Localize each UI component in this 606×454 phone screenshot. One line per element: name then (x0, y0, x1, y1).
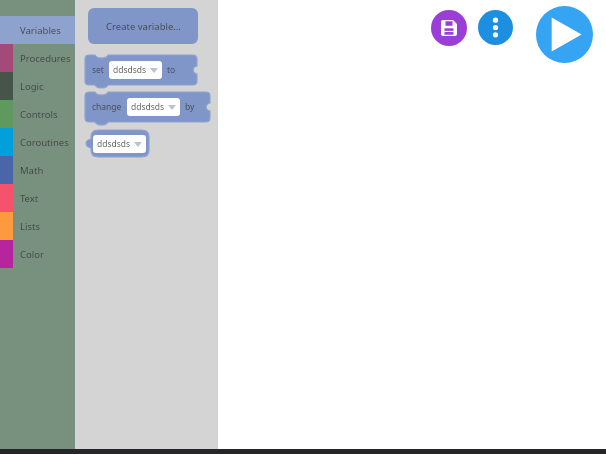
staticText: by (185, 101, 195, 113)
button[interactable]: Color (0, 240, 75, 268)
staticText: Variables (20, 24, 61, 37)
staticText: ddsdsds (113, 64, 147, 76)
button[interactable]: Lists (0, 212, 75, 240)
button[interactable]: Math (0, 156, 75, 184)
staticText: Math (20, 164, 44, 177)
button[interactable]: Variables (0, 16, 75, 44)
button[interactable]: Run (536, 6, 593, 63)
button[interactable]: Procedures (0, 44, 75, 72)
button[interactable]: ddsdsds (97, 135, 142, 153)
button[interactable]: Logic (0, 72, 75, 100)
button[interactable]: ddsdsds (113, 61, 158, 79)
staticText: Color (20, 248, 44, 261)
button[interactable]: Controls (0, 100, 75, 128)
button[interactable]: set (85, 55, 205, 91)
staticText: Logic (20, 80, 44, 93)
staticText: change (92, 101, 122, 113)
staticText: ddsdsds (131, 101, 165, 113)
staticText: to (167, 64, 176, 76)
staticText: Lists (20, 220, 40, 233)
button[interactable]: More options (478, 10, 513, 45)
button[interactable]: Text (0, 184, 75, 212)
button[interactable]: ddsdsds (131, 98, 176, 116)
button[interactable]: ddsdsds (85, 130, 149, 157)
staticText: Coroutines (20, 136, 69, 149)
staticText: ddsdsds (97, 138, 131, 150)
staticText: Text (20, 192, 39, 205)
staticText: Create variable... (106, 20, 181, 33)
button[interactable]: Create variable... (88, 8, 198, 44)
staticText: Procedures (20, 52, 71, 65)
staticText: Controls (20, 108, 58, 121)
button[interactable]: Coroutines (0, 128, 75, 156)
staticText: set (92, 64, 104, 76)
button[interactable]: Save (431, 10, 467, 46)
button[interactable]: change (85, 92, 218, 128)
